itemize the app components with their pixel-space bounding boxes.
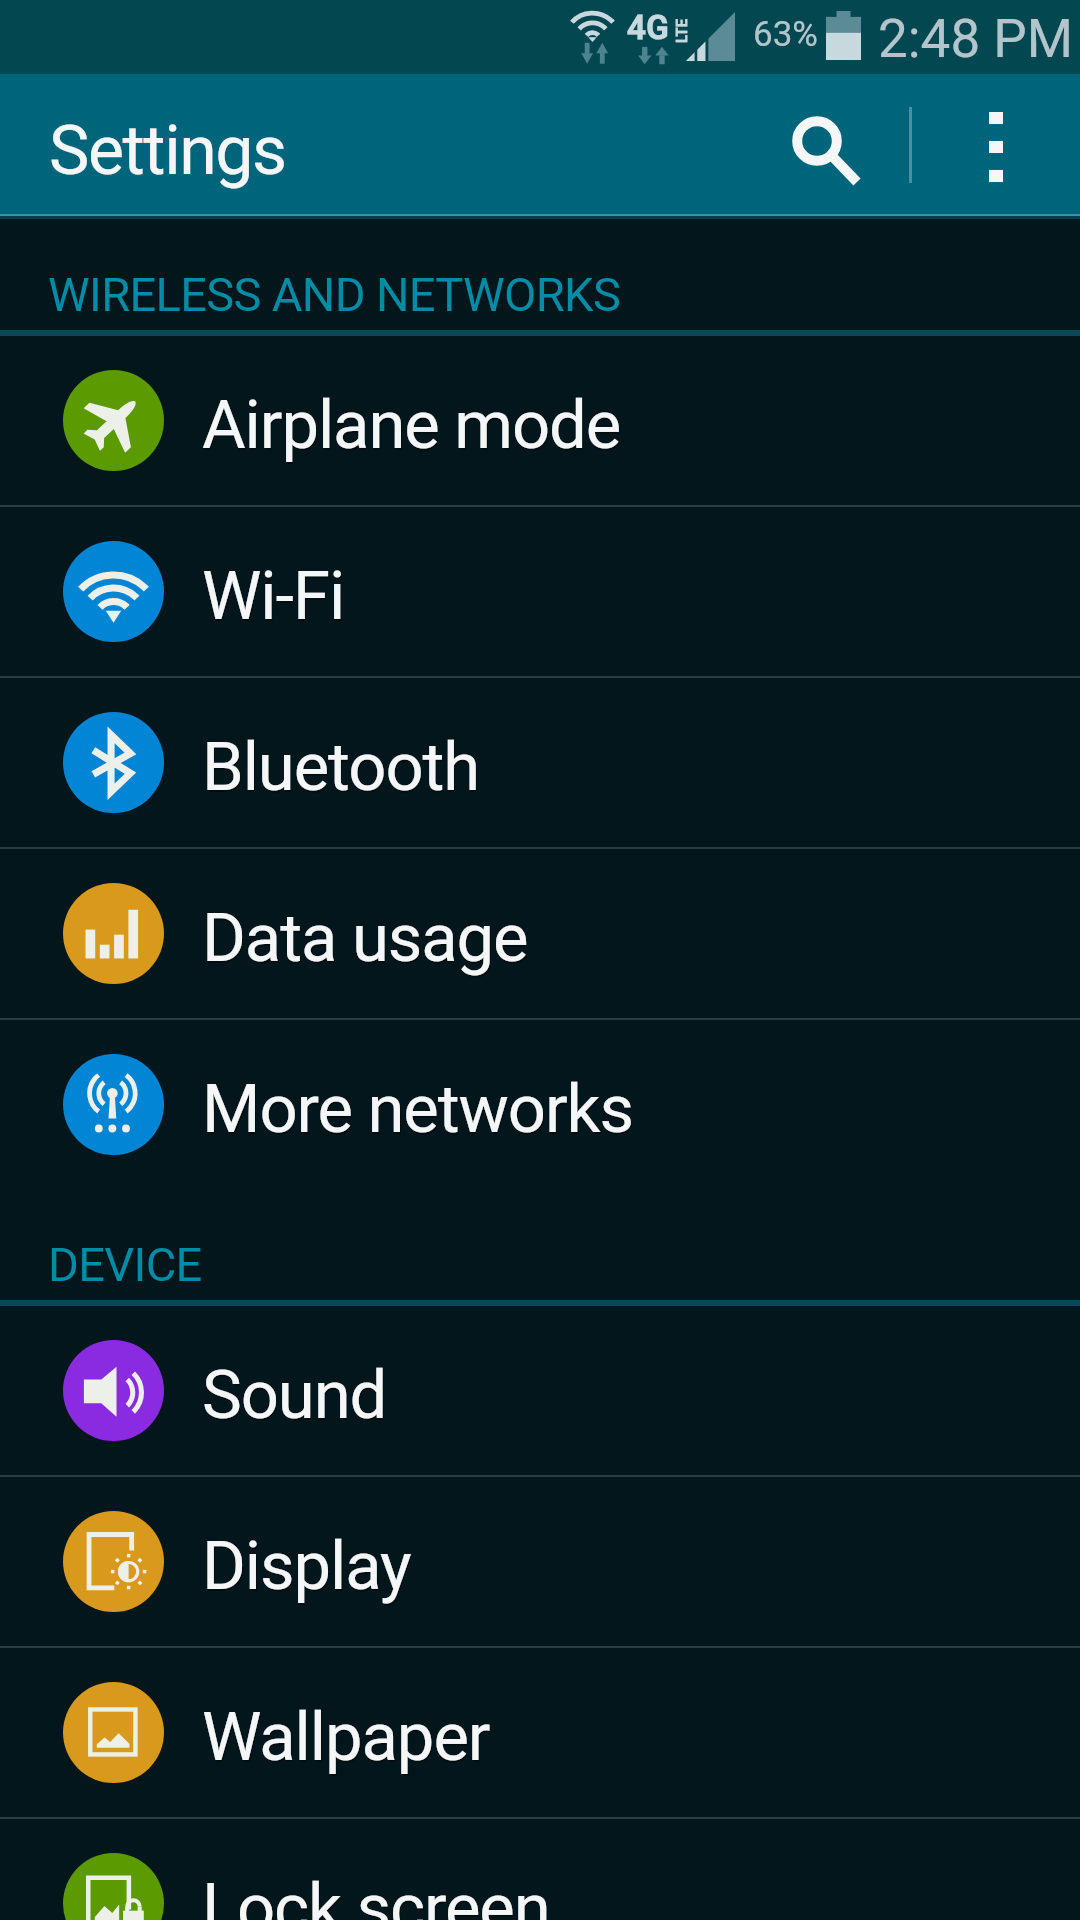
- button[interactable]: Wi-Fi: [0, 507, 1080, 676]
- staticText: Bluetooth: [202, 728, 480, 807]
- staticText: Data usage: [203, 901, 529, 980]
- staticText: Display: [202, 1527, 411, 1606]
- staticText: Sound: [202, 1356, 387, 1435]
- button[interactable]: Bluetooth: [0, 678, 1080, 847]
- staticText: Airplane mode: [203, 388, 622, 467]
- staticText: Wi-Fi: [202, 557, 345, 636]
- staticText: Lock screen: [202, 1869, 550, 1920]
- staticText: Wallpaper: [203, 1700, 491, 1779]
- button[interactable]: Search: [762, 74, 878, 214]
- staticText: Wi-Fi: [203, 559, 346, 638]
- staticText: Airplane mode: [202, 386, 621, 465]
- staticText: LTE: [673, 18, 691, 43]
- button[interactable]: Sound: [0, 1306, 1080, 1475]
- staticText: Sound: [203, 1358, 388, 1437]
- button[interactable]: Display: [0, 1477, 1080, 1646]
- staticText: Display: [203, 1529, 412, 1608]
- staticText: Wallpaper: [202, 1698, 490, 1777]
- staticText: More networks: [203, 1072, 634, 1151]
- staticText: WIRELESS AND NETWORKS: [48, 267, 621, 322]
- button[interactable]: Airplane mode: [0, 336, 1080, 505]
- button[interactable]: Wallpaper: [0, 1648, 1080, 1817]
- staticText: DEVICE: [48, 1237, 202, 1292]
- button[interactable]: Lock screen: [0, 1819, 1080, 1920]
- staticText: Data usage: [202, 899, 528, 978]
- button[interactable]: More options: [940, 74, 1056, 214]
- staticText: 2:48 PM: [878, 8, 1074, 70]
- button[interactable]: Data usage: [0, 849, 1080, 1018]
- staticText: 63%: [753, 14, 818, 55]
- staticText: Lock screen: [203, 1871, 551, 1920]
- button[interactable]: More networks: [0, 1020, 1080, 1189]
- staticText: More networks: [202, 1070, 633, 1149]
- staticText: Settings: [49, 111, 286, 191]
- staticText: 4G: [627, 8, 670, 47]
- staticText: Bluetooth: [203, 730, 481, 809]
